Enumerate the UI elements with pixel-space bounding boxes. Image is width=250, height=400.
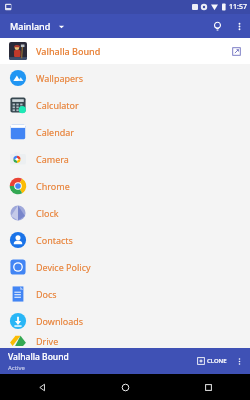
button[interactable]: Downloads: [0, 307, 250, 334]
staticText: Calendar: [36, 126, 74, 138]
button[interactable]: Recent apps: [167, 374, 250, 400]
staticText: Drive: [36, 335, 59, 347]
button[interactable]: Open in new window: [226, 41, 246, 61]
button[interactable]: Contacts: [0, 226, 250, 253]
button[interactable]: Camera: [0, 145, 250, 172]
button[interactable]: Docs: [0, 280, 250, 307]
staticText: Camera: [36, 153, 69, 165]
button[interactable]: More options: [228, 15, 250, 37]
button[interactable]: Chrome: [0, 172, 250, 199]
staticText: Device Policy: [36, 261, 91, 273]
staticText: Valhalla Bound: [36, 45, 101, 57]
button[interactable]: Wallpapers: [0, 64, 250, 91]
staticText: CLONE: [207, 357, 227, 365]
staticText: Chrome: [36, 180, 70, 192]
button[interactable]: Clock: [0, 199, 250, 226]
button[interactable]: Drive: [0, 334, 250, 348]
staticText: Downloads: [36, 315, 84, 327]
button[interactable]: Valhalla Bound: [0, 38, 250, 64]
button[interactable]: More options: [230, 352, 248, 370]
staticText: Valhalla Bound: [8, 351, 69, 363]
staticText: Contacts: [36, 234, 73, 246]
button[interactable]: Home: [84, 374, 167, 400]
button[interactable]: CLONE: [194, 354, 230, 368]
button[interactable]: Back: [0, 374, 84, 400]
button[interactable]: Device Policy: [0, 253, 250, 280]
button[interactable]: Calculator: [0, 91, 250, 118]
staticText: Mainland: [10, 20, 51, 32]
staticText: 11:57: [229, 2, 247, 12]
staticText: Clock: [36, 207, 59, 219]
staticText: Wallpapers: [36, 72, 84, 84]
staticText: Calculator: [36, 99, 79, 111]
button[interactable]: Tips: [206, 15, 228, 37]
staticText: Docs: [36, 288, 57, 300]
button[interactable]: Mainland: [0, 16, 71, 36]
button[interactable]: Calendar: [0, 118, 250, 145]
staticText: Active: [8, 364, 25, 372]
